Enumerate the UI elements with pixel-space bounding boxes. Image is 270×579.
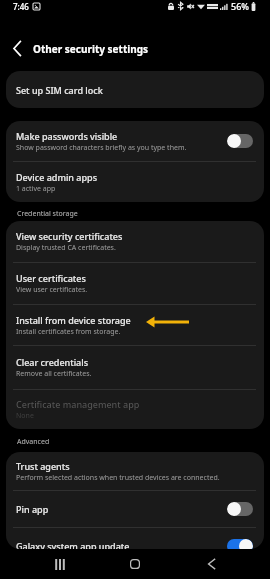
button[interactable]: Make passwords visible [6, 121, 264, 161]
staticText: Certificate management app [16, 398, 140, 410]
staticText: Trust agents [16, 460, 70, 472]
staticText: User certificates [16, 272, 86, 284]
button[interactable]: Recent apps [44, 549, 75, 579]
staticText: Advanced [17, 437, 50, 447]
staticText: Show password characters briefly as you … [16, 143, 187, 153]
staticText: Perform selected actions when trusted de… [16, 473, 220, 483]
staticText: Other security settings [33, 42, 149, 56]
button[interactable]: Switch on [227, 539, 253, 549]
staticText: Install from device storage [16, 314, 131, 326]
staticText: 7:46 [13, 1, 29, 12]
button[interactable]: Certificate management app [6, 390, 264, 429]
staticText: View user certificates. [16, 285, 88, 295]
button[interactable]: Pin app [6, 491, 264, 527]
button[interactable]: View security certificates [6, 221, 264, 262]
staticText: Make passwords visible [16, 130, 118, 142]
staticText: Display trusted CA certificates. [16, 243, 116, 253]
button[interactable]: Navigate up [0, 26, 33, 71]
staticText: Credential storage [17, 209, 78, 219]
staticText: Install certificates from storage. [16, 327, 121, 337]
staticText: 56% [231, 0, 249, 12]
staticText: Clear credentials [16, 356, 89, 368]
staticText: Remove all certificates. [16, 369, 92, 379]
button[interactable]: Install from device storage [6, 305, 264, 345]
button[interactable]: Switch off [227, 134, 253, 148]
button[interactable]: Galaxy system app update [6, 528, 264, 549]
staticText: 1 active app [16, 184, 56, 194]
button[interactable]: Device admin apps [6, 162, 264, 202]
staticText: None [16, 411, 34, 421]
staticText: Set up SIM card lock [16, 84, 103, 96]
button[interactable]: Trust agents [6, 452, 264, 490]
button[interactable]: Clear credentials [6, 346, 264, 389]
button[interactable]: Switch off [227, 502, 253, 516]
button[interactable]: Home [119, 549, 151, 579]
button[interactable]: Set up SIM card lock [6, 71, 264, 108]
staticText: Galaxy system app update [16, 540, 130, 549]
staticText: View security certificates [16, 230, 123, 242]
button[interactable]: Back [195, 549, 227, 579]
staticText: Pin app [16, 503, 49, 515]
button[interactable]: User certificates [6, 263, 264, 304]
staticText: Device admin apps [16, 171, 98, 183]
